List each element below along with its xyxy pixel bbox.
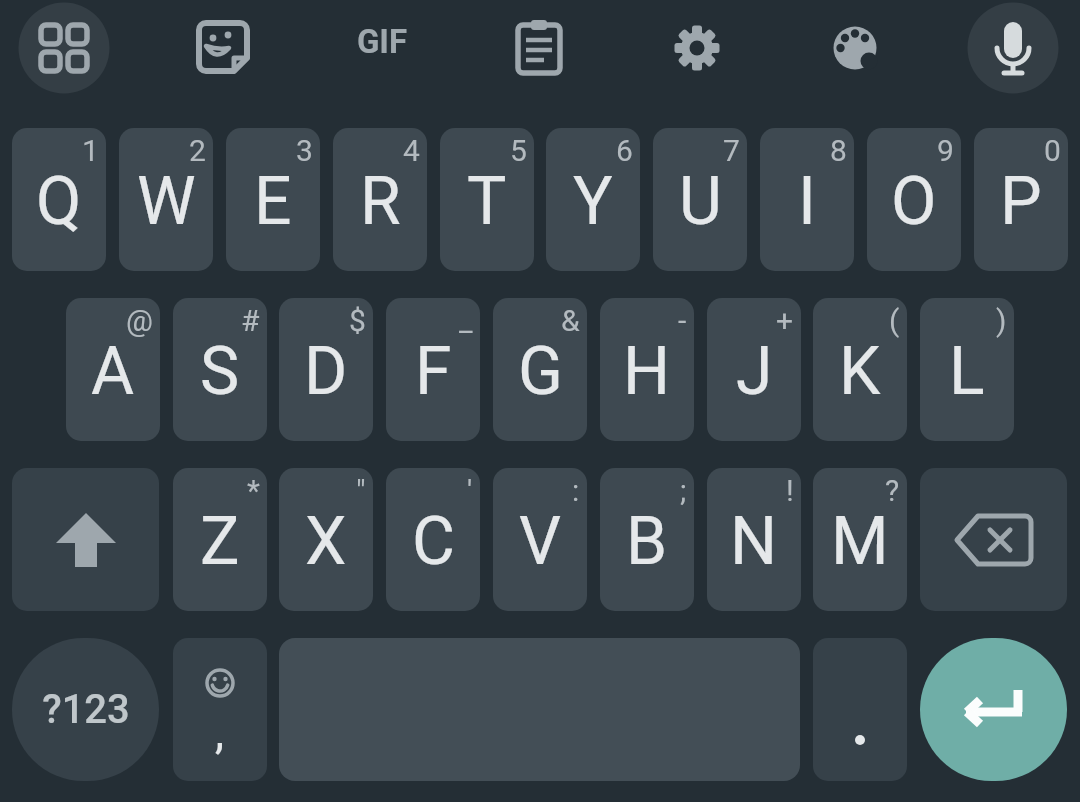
staticText: 6 [616, 133, 633, 168]
button[interactable]: W [119, 128, 213, 271]
staticText: " [356, 473, 366, 508]
staticText: , [215, 705, 225, 759]
button[interactable]: , [173, 638, 267, 781]
staticText: 9 [937, 133, 954, 168]
staticText: L [949, 333, 985, 410]
button[interactable]: ?123 [12, 638, 159, 781]
button[interactable] [920, 468, 1067, 611]
staticText: 1 [82, 133, 99, 168]
staticText: - [678, 303, 687, 338]
staticText: H [623, 333, 671, 410]
button[interactable] [196, 20, 250, 74]
button[interactable]: Y [546, 128, 640, 271]
button[interactable]: B [600, 468, 694, 611]
staticText: 5 [510, 133, 527, 168]
staticText: J [736, 333, 773, 410]
staticText: $ [349, 303, 366, 338]
button[interactable]: E [226, 128, 320, 271]
staticText: Z [200, 503, 240, 580]
button[interactable]: R [333, 128, 427, 271]
button[interactable]: A [66, 298, 160, 441]
staticText: F [415, 333, 452, 410]
staticText: & [561, 303, 580, 338]
staticText: W [137, 163, 196, 240]
button[interactable] [920, 638, 1067, 781]
staticText: 3 [296, 133, 313, 168]
button[interactable]: G [493, 298, 587, 441]
staticText: O [891, 163, 937, 240]
staticText: @ [126, 303, 153, 338]
staticText: ( [889, 303, 900, 338]
staticText: ? [885, 473, 900, 508]
staticText: 7 [723, 133, 740, 168]
staticText: N [730, 503, 778, 580]
staticText: ' [467, 473, 473, 508]
button[interactable]: V [493, 468, 587, 611]
button[interactable] [12, 468, 159, 611]
button[interactable] [832, 25, 878, 71]
button[interactable]: J [707, 298, 801, 441]
staticText: D [304, 333, 348, 410]
staticText: E [254, 163, 292, 240]
staticText: T [467, 163, 507, 240]
button[interactable] [965, 0, 1061, 96]
button[interactable]: I [760, 128, 854, 271]
staticText: G [518, 333, 563, 410]
staticText: I [798, 163, 816, 240]
button[interactable]: GIF [347, 22, 417, 74]
staticText: : [572, 473, 580, 508]
button[interactable]: C [386, 468, 480, 611]
staticText: _ [459, 303, 473, 338]
button[interactable]: O [867, 128, 961, 271]
staticText: K [839, 333, 881, 410]
button[interactable]: K [813, 298, 907, 441]
button[interactable] [985, 20, 1041, 76]
staticText: + [776, 303, 794, 338]
staticText: ; [680, 473, 687, 508]
button[interactable]: P [974, 128, 1068, 271]
staticText: U [679, 163, 722, 240]
staticText: 0 [1044, 133, 1061, 168]
button[interactable] [813, 638, 907, 781]
staticText: R [360, 163, 401, 240]
button[interactable]: U [653, 128, 747, 271]
button[interactable] [40, 24, 88, 72]
staticText: ) [996, 303, 1007, 338]
button[interactable]: S [173, 298, 267, 441]
button[interactable]: N [707, 468, 801, 611]
staticText: 4 [403, 133, 420, 168]
button[interactable]: T [440, 128, 534, 271]
staticText: 8 [830, 133, 847, 168]
staticText: B [626, 503, 668, 580]
button[interactable]: Q [12, 128, 106, 271]
button[interactable] [511, 20, 567, 76]
staticText: P [1000, 163, 1042, 240]
staticText: ! [786, 473, 794, 508]
button[interactable]: Z [173, 468, 267, 611]
staticText: C [412, 503, 455, 580]
button[interactable]: L [920, 298, 1014, 441]
staticText: Q [36, 163, 82, 240]
button[interactable] [673, 24, 721, 72]
button[interactable]: X [279, 468, 373, 611]
staticText: S [200, 333, 240, 410]
staticText: V [519, 503, 562, 580]
staticText: ?123 [42, 686, 130, 733]
staticText: M [831, 503, 889, 580]
staticText: Y [573, 163, 613, 240]
staticText: # [241, 303, 260, 338]
button[interactable] [16, 0, 112, 96]
staticText: A [91, 333, 135, 410]
button[interactable]: H [600, 298, 694, 441]
button[interactable]: M [813, 468, 907, 611]
button[interactable]: D [279, 298, 373, 441]
button[interactable]: F [386, 298, 480, 441]
staticText: * [247, 473, 260, 508]
staticText: X [305, 503, 347, 580]
staticText: 2 [189, 133, 206, 168]
